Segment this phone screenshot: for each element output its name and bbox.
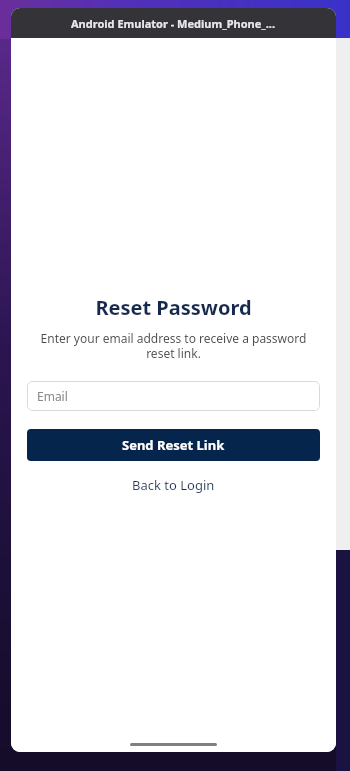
staticText: Back to Login <box>132 476 215 494</box>
staticText: Send Reset Link <box>122 436 225 454</box>
button[interactable]: Back to Login <box>126 474 221 496</box>
staticText: Reset Password <box>95 294 252 321</box>
staticText: Enter your email address to receive a pa… <box>27 330 320 361</box>
button[interactable]: Send Reset Link <box>27 429 320 461</box>
button[interactable]: Email <box>27 381 320 411</box>
other: Home <box>130 743 217 746</box>
staticText: Email <box>37 388 68 404</box>
staticText: Android Emulator - Medium_Phone_... <box>71 16 276 31</box>
